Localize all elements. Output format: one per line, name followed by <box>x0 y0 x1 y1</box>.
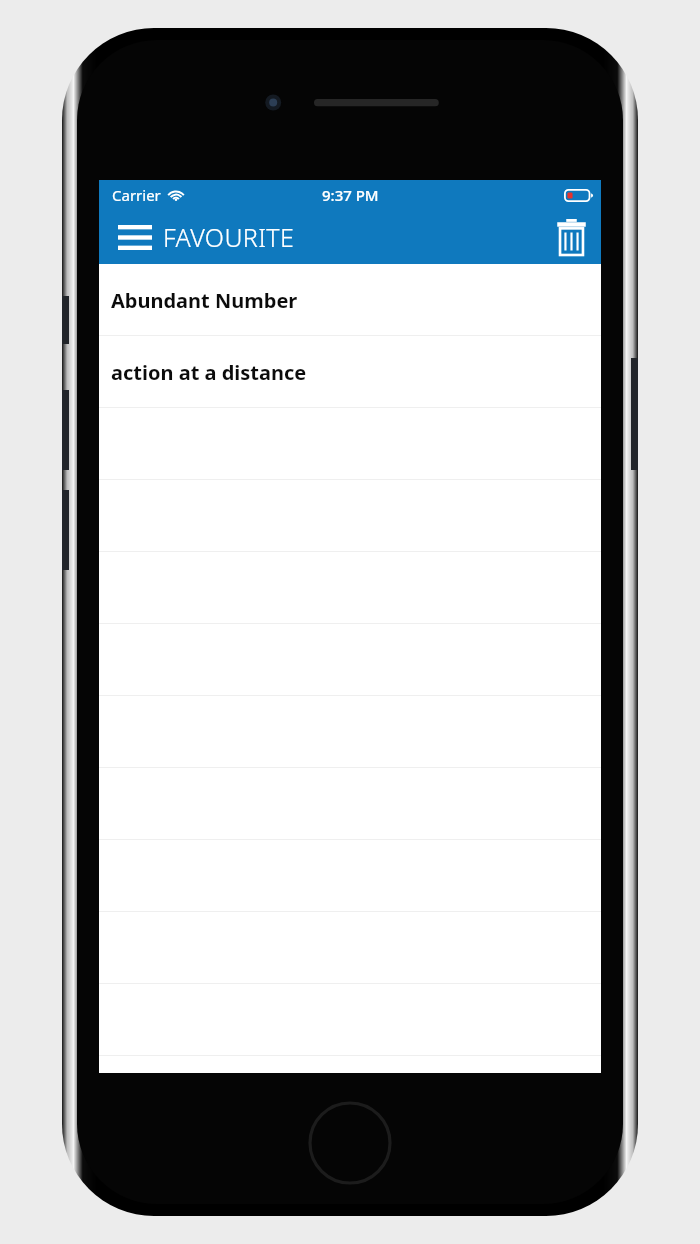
button[interactable]: Abundant Number <box>99 264 601 336</box>
button[interactable]: Delete <box>542 213 601 261</box>
other: Menu <box>118 225 152 250</box>
button[interactable]: Menu <box>99 211 309 263</box>
staticText: Carrier <box>112 185 161 205</box>
staticText: Abundant Number <box>111 287 298 314</box>
staticText: FAVOURITE <box>163 220 295 254</box>
staticText: 9:37 PM <box>322 185 379 205</box>
button[interactable]: action at a distance <box>99 336 601 408</box>
staticText: action at a distance <box>111 359 307 386</box>
other: Delete <box>556 219 587 255</box>
